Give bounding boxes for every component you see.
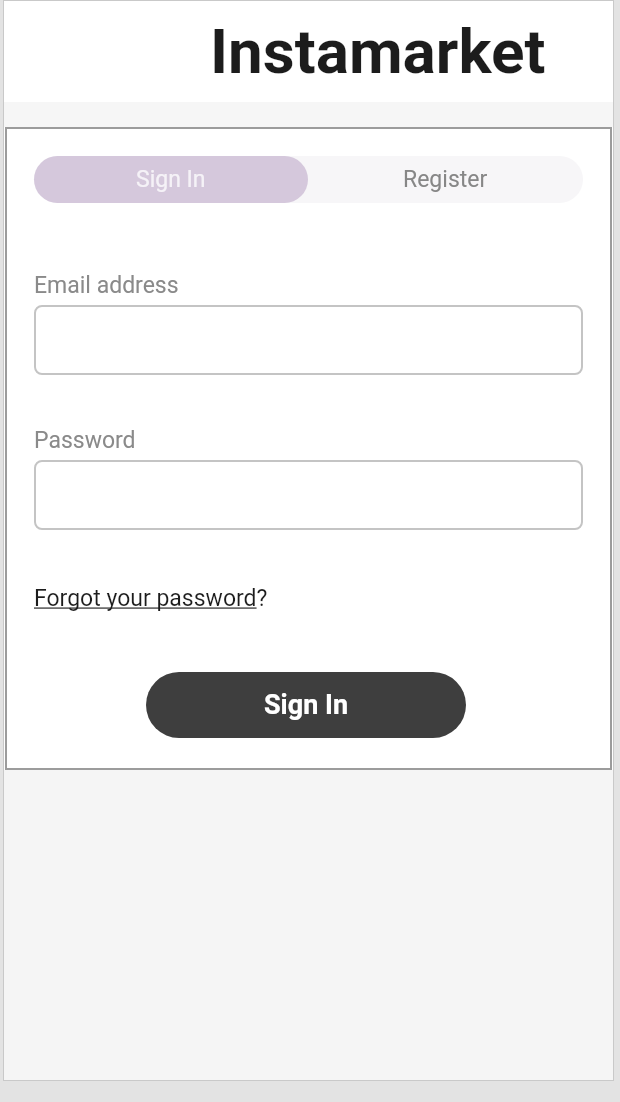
staticText: Sign In (264, 689, 349, 721)
button[interactable]: Register (308, 156, 583, 203)
staticText: Register (403, 166, 488, 193)
button[interactable]: Sign In (146, 672, 466, 738)
staticText: Sign In (136, 166, 206, 193)
button[interactable]: Sign In (34, 156, 308, 203)
button[interactable]: Forgot your password? (34, 585, 268, 612)
button[interactable] (34, 460, 583, 530)
staticText: Instamarket (210, 15, 546, 88)
staticText: Password (34, 427, 136, 454)
staticText: Email address (34, 272, 179, 299)
button[interactable] (34, 305, 583, 375)
